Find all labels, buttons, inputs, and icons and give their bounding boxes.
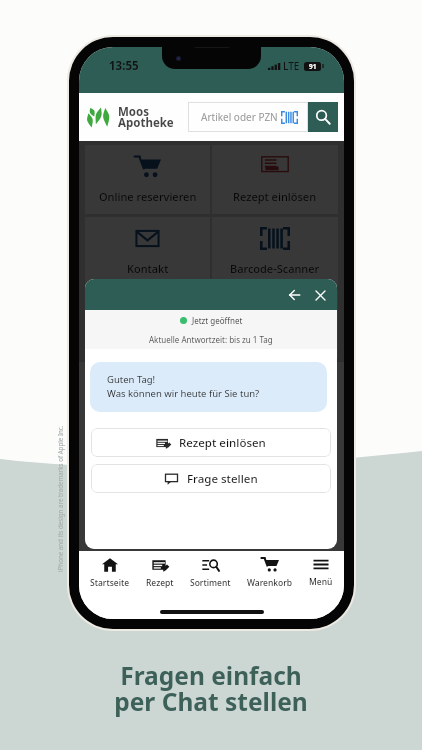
staticText: Sortiment <box>190 577 231 589</box>
staticText: LTE <box>283 59 300 73</box>
staticText: Rezept einlösen <box>233 189 317 204</box>
staticText: Jetzt geöffnet <box>192 315 243 326</box>
button[interactable]: Zurück <box>282 283 306 307</box>
button[interactable]: Kontakt <box>85 217 210 286</box>
staticText: Notdienst <box>249 333 302 348</box>
staticText: Frage stellen <box>187 471 258 487</box>
staticText: 91 <box>309 62 317 71</box>
staticText: iPhone and its design are trademarks of … <box>56 425 64 572</box>
button[interactable]: Suchen <box>308 102 338 132</box>
staticText: Rezept <box>146 577 174 589</box>
staticText: Aktuelle Antwortzeit: bis zu 1 Tag <box>149 334 273 345</box>
button[interactable]: Notdienst <box>212 289 338 358</box>
button[interactable]: Artikel oder PZN <box>188 102 308 132</box>
staticText: Artikel oder PZN <box>201 110 278 124</box>
button[interactable]: Menü <box>304 555 338 591</box>
staticText: Online reservieren <box>99 189 197 204</box>
button[interactable]: Beratung <box>85 289 210 358</box>
button[interactable]: Startseite <box>85 555 135 592</box>
staticText: Menü <box>309 576 333 588</box>
staticText: Rezept einlösen <box>179 435 266 451</box>
staticText: Moos Apotheke <box>118 104 174 131</box>
button[interactable]: Online reservieren <box>85 145 210 214</box>
button[interactable]: Rezept einlösen <box>212 145 338 214</box>
button[interactable]: Frage stellen <box>91 464 331 493</box>
staticText: Guten Tag! Was können wir heute für Sie … <box>107 373 260 400</box>
button[interactable]: Rezept <box>141 555 179 592</box>
staticText: Barcode-Scanner <box>230 261 320 276</box>
button[interactable]: Barcode-Scanner <box>212 217 338 286</box>
staticText: Kontakt <box>127 261 169 276</box>
button[interactable]: Rezept einlösen <box>91 428 331 457</box>
staticText: Warenkorb <box>247 577 293 589</box>
button[interactable]: Sortiment <box>185 555 236 592</box>
button[interactable]: Warenkorb <box>242 554 298 592</box>
staticText: Fragen einfach per Chat stellen <box>114 659 308 719</box>
staticText: Startseite <box>90 577 130 589</box>
button[interactable]: Schließen <box>308 283 332 307</box>
staticText: Beratung <box>123 333 173 348</box>
staticText: 13:55 <box>109 58 139 74</box>
